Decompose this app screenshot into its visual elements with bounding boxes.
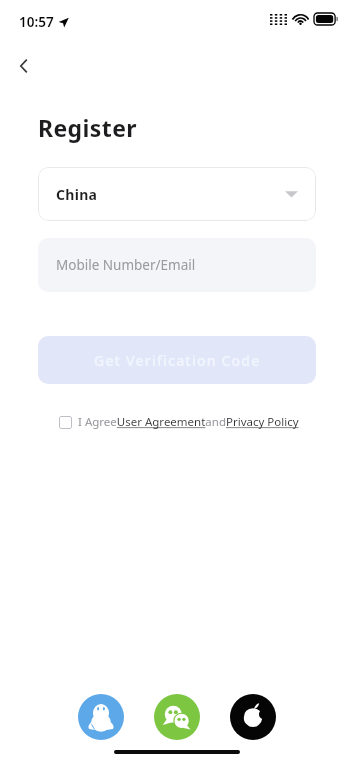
button[interactable]: Back (6, 48, 42, 84)
staticText: China (56, 185, 98, 204)
button[interactable]: WeChat login (154, 694, 200, 740)
button[interactable]: QQ login (78, 694, 124, 740)
button[interactable]: Get Verification Code (38, 336, 316, 384)
staticText: Get Verification Code (94, 351, 261, 370)
button[interactable]: Mobile Number/Email (38, 238, 316, 292)
button[interactable]: China (38, 167, 316, 221)
staticText: 10:57 (19, 13, 54, 31)
button[interactable]: I AgreeUser AgreementandPrivacy Policy (78, 414, 299, 430)
button[interactable]: Apple login (230, 694, 276, 740)
button[interactable]: Agree checkbox (55, 412, 75, 432)
staticText: Mobile Number/Email (56, 256, 196, 274)
staticText: Register (38, 112, 137, 143)
